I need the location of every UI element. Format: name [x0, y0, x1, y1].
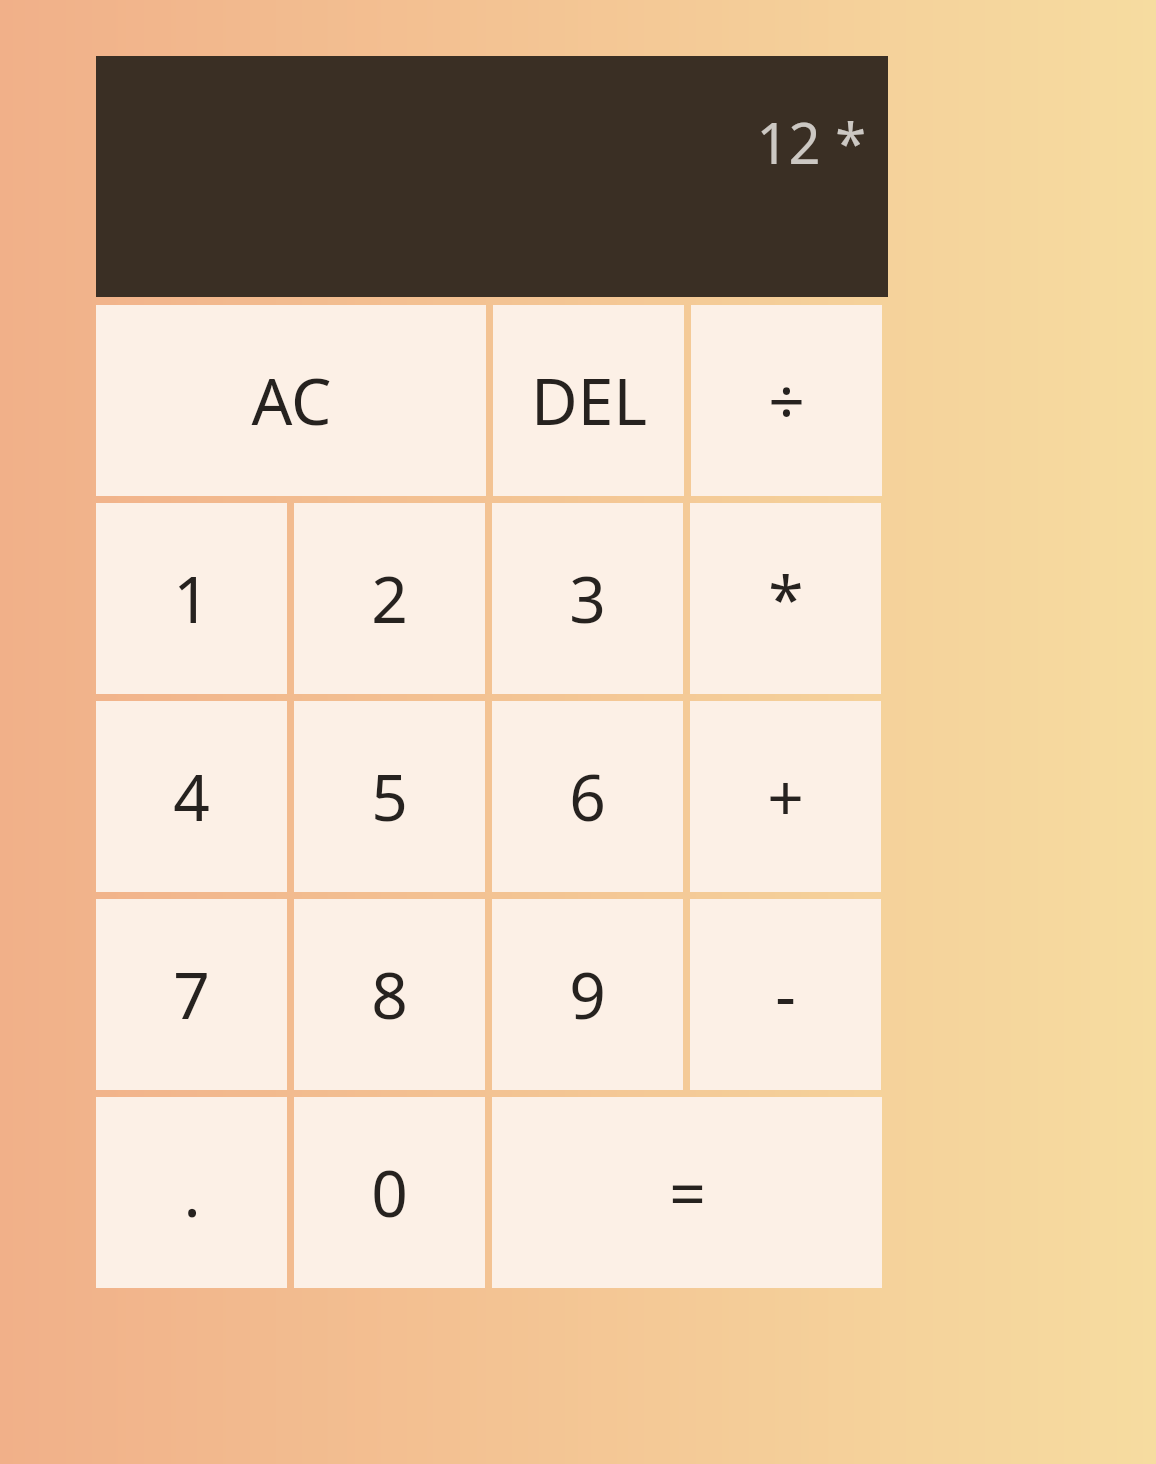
staticText: *	[768, 555, 804, 642]
staticText: 0	[371, 1149, 408, 1236]
button[interactable]: 2	[294, 503, 485, 694]
button[interactable]: 6	[492, 701, 683, 892]
button[interactable]: 5	[294, 701, 485, 892]
staticText: AC	[251, 357, 332, 444]
staticText: 5	[371, 753, 408, 840]
staticText: 7	[173, 951, 210, 1038]
staticText: -	[775, 951, 796, 1038]
button[interactable]: -	[690, 899, 881, 1090]
staticText: 12 *	[756, 104, 866, 180]
staticText: =	[669, 1149, 706, 1236]
staticText: 9	[569, 951, 606, 1038]
button[interactable]: 3	[492, 503, 683, 694]
staticText: 2	[371, 555, 408, 642]
button[interactable]: 0	[294, 1097, 485, 1288]
button[interactable]: AC	[96, 305, 486, 496]
staticText: .	[183, 1149, 201, 1236]
staticText: 6	[569, 753, 606, 840]
button[interactable]: ÷	[691, 305, 882, 496]
button[interactable]: .	[96, 1097, 287, 1288]
button[interactable]: 8	[294, 899, 485, 1090]
button[interactable]: 12 *	[96, 56, 888, 297]
button[interactable]: *	[690, 503, 881, 694]
staticText: 3	[569, 555, 606, 642]
staticText: ÷	[768, 357, 805, 444]
staticText: DEL	[531, 357, 647, 444]
button[interactable]: 1	[96, 503, 287, 694]
button[interactable]: +	[690, 701, 881, 892]
staticText: 8	[371, 951, 408, 1038]
button[interactable]: =	[492, 1097, 882, 1288]
staticText: +	[767, 753, 804, 840]
button[interactable]: 4	[96, 701, 287, 892]
staticText: 1	[173, 555, 210, 642]
button[interactable]: 9	[492, 899, 683, 1090]
button[interactable]: 7	[96, 899, 287, 1090]
staticText: 4	[173, 753, 210, 840]
button[interactable]: DEL	[493, 305, 684, 496]
